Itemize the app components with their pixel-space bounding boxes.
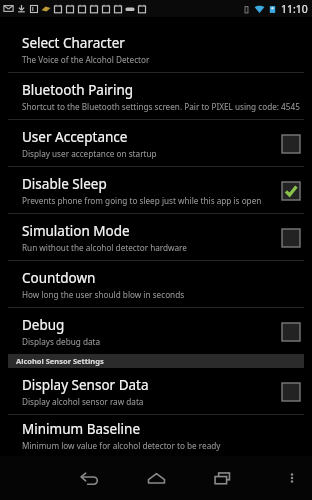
button[interactable]: Unchecked — [281, 228, 300, 247]
button[interactable]: Disable Sleep — [0, 167, 312, 213]
button[interactable]: Unchecked — [281, 382, 300, 401]
staticText: Displays debug data — [22, 336, 101, 347]
button[interactable]: Unchecked — [281, 134, 300, 153]
button[interactable]: Minimum Baseline — [0, 415, 312, 456]
button[interactable]: Bluetooth Pairing — [0, 73, 312, 119]
staticText: Select Character — [22, 34, 125, 52]
staticText: Display user acceptance on startup — [22, 148, 157, 159]
button[interactable]: Home — [139, 461, 173, 495]
staticText: How long the user should blow in seconds — [22, 289, 185, 300]
staticText: Display Sensor Data — [22, 376, 149, 394]
button[interactable]: Select Character — [0, 26, 312, 72]
button[interactable]: Recent apps — [206, 461, 240, 495]
staticText: Run without the alcohol detector hardwar… — [22, 242, 187, 253]
button[interactable]: Display Sensor Data — [0, 368, 312, 414]
staticText: Debug — [22, 316, 65, 334]
staticText: Minimum Baseline — [22, 420, 141, 438]
staticText: 11:10 — [281, 2, 308, 16]
staticText: The Voice of the Alcohol Detector — [22, 54, 150, 65]
staticText: Countdown — [22, 269, 96, 287]
staticText: Alcohol Sensor Settings — [16, 356, 104, 366]
staticText: Display alcohol sensor raw data — [22, 396, 144, 407]
staticText: Prevents phone from going to sleep just … — [22, 195, 262, 206]
staticText: Minimum low value for alcohol detector t… — [22, 440, 221, 451]
staticText: Simulation Mode — [22, 222, 130, 240]
button[interactable]: Simulation Mode — [0, 214, 312, 260]
staticText: Bluetooth Pairing — [22, 81, 134, 99]
staticText: Shortcut to the Bluetooth settings scree… — [22, 101, 300, 112]
button[interactable]: Checked — [281, 181, 300, 200]
button[interactable]: Countdown — [0, 261, 312, 307]
staticText: User Acceptance — [22, 128, 128, 146]
button[interactable]: User Acceptance — [0, 120, 312, 166]
button[interactable]: More options — [278, 464, 306, 492]
staticText: Disable Sleep — [22, 175, 107, 193]
button[interactable]: Debug — [0, 308, 312, 354]
button[interactable]: Back — [72, 461, 106, 495]
button[interactable]: Unchecked — [281, 322, 300, 341]
